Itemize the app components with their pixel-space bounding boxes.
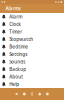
staticText: Clock <box>9 21 21 27</box>
staticText: Settings <box>9 51 27 57</box>
staticText: Backup <box>9 66 26 72</box>
button[interactable]: Clock <box>20 90 28 97</box>
staticText: Sounds <box>9 59 25 65</box>
button[interactable]: About <box>0 73 64 80</box>
button[interactable]: Timer <box>28 90 36 97</box>
staticText: Bedtime <box>9 44 28 50</box>
button[interactable]: Stopwatch <box>0 35 64 43</box>
button[interactable]: Bedtime <box>0 43 64 50</box>
staticText: Alarms <box>5 5 20 12</box>
staticText: About <box>9 74 23 80</box>
button[interactable]: Backup <box>0 65 64 73</box>
button[interactable]: Help <box>0 80 64 88</box>
button[interactable]: Settings <box>43 90 51 97</box>
staticText: Help <box>9 81 19 87</box>
button[interactable]: Alarm <box>13 90 20 97</box>
staticText: Alarm <box>9 14 22 20</box>
button[interactable]: Alarm <box>0 13 64 20</box>
staticText: Stopwatch <box>9 36 33 42</box>
button[interactable]: Clock <box>0 20 64 28</box>
button[interactable]: Settings <box>0 50 64 58</box>
button[interactable]: Timer <box>0 28 64 35</box>
staticText: Timer <box>9 29 22 35</box>
button[interactable]: Sounds <box>0 58 64 65</box>
button[interactable]: Stopwatch <box>36 90 43 97</box>
